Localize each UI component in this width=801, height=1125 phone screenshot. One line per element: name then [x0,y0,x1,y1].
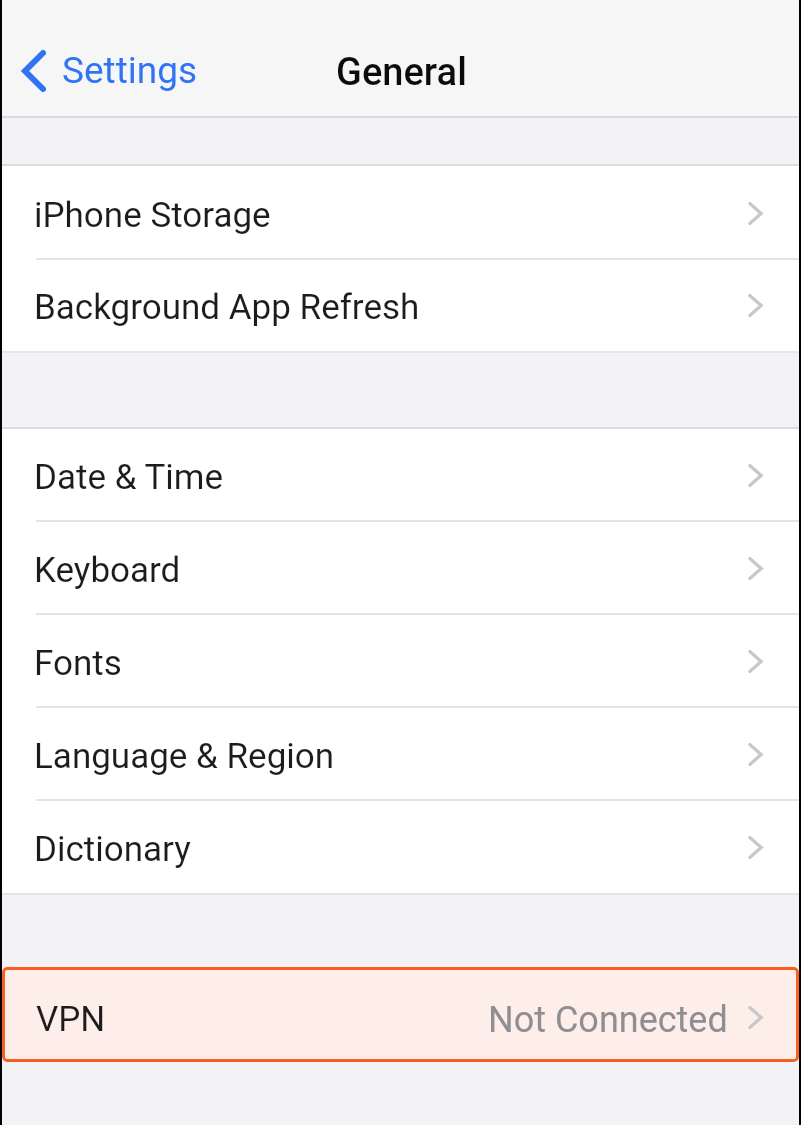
button[interactable]: VPN [2,967,799,1062]
button[interactable]: Language & Region [0,708,801,801]
staticText: Settings [62,49,198,92]
staticText: iPhone Storage [34,195,271,236]
staticText: Date & Time [34,457,224,498]
staticText: Background App Refresh [34,287,420,328]
button[interactable]: Fonts [0,615,801,708]
staticText: Dictionary [34,829,191,870]
button[interactable]: iPhone Storage [0,166,801,260]
staticText: Language & Region [34,736,335,777]
button[interactable]: Dictionary [0,801,801,893]
staticText: General [336,50,467,95]
staticText: Fonts [34,643,122,684]
button[interactable]: Date & Time [0,429,801,522]
staticText: VPN [36,999,106,1040]
button[interactable]: Back to Settings [16,43,210,98]
staticText: Keyboard [34,550,181,591]
button[interactable]: Background App Refresh [0,260,801,351]
staticText: Not Connected [488,999,728,1041]
button[interactable]: Keyboard [0,522,801,615]
